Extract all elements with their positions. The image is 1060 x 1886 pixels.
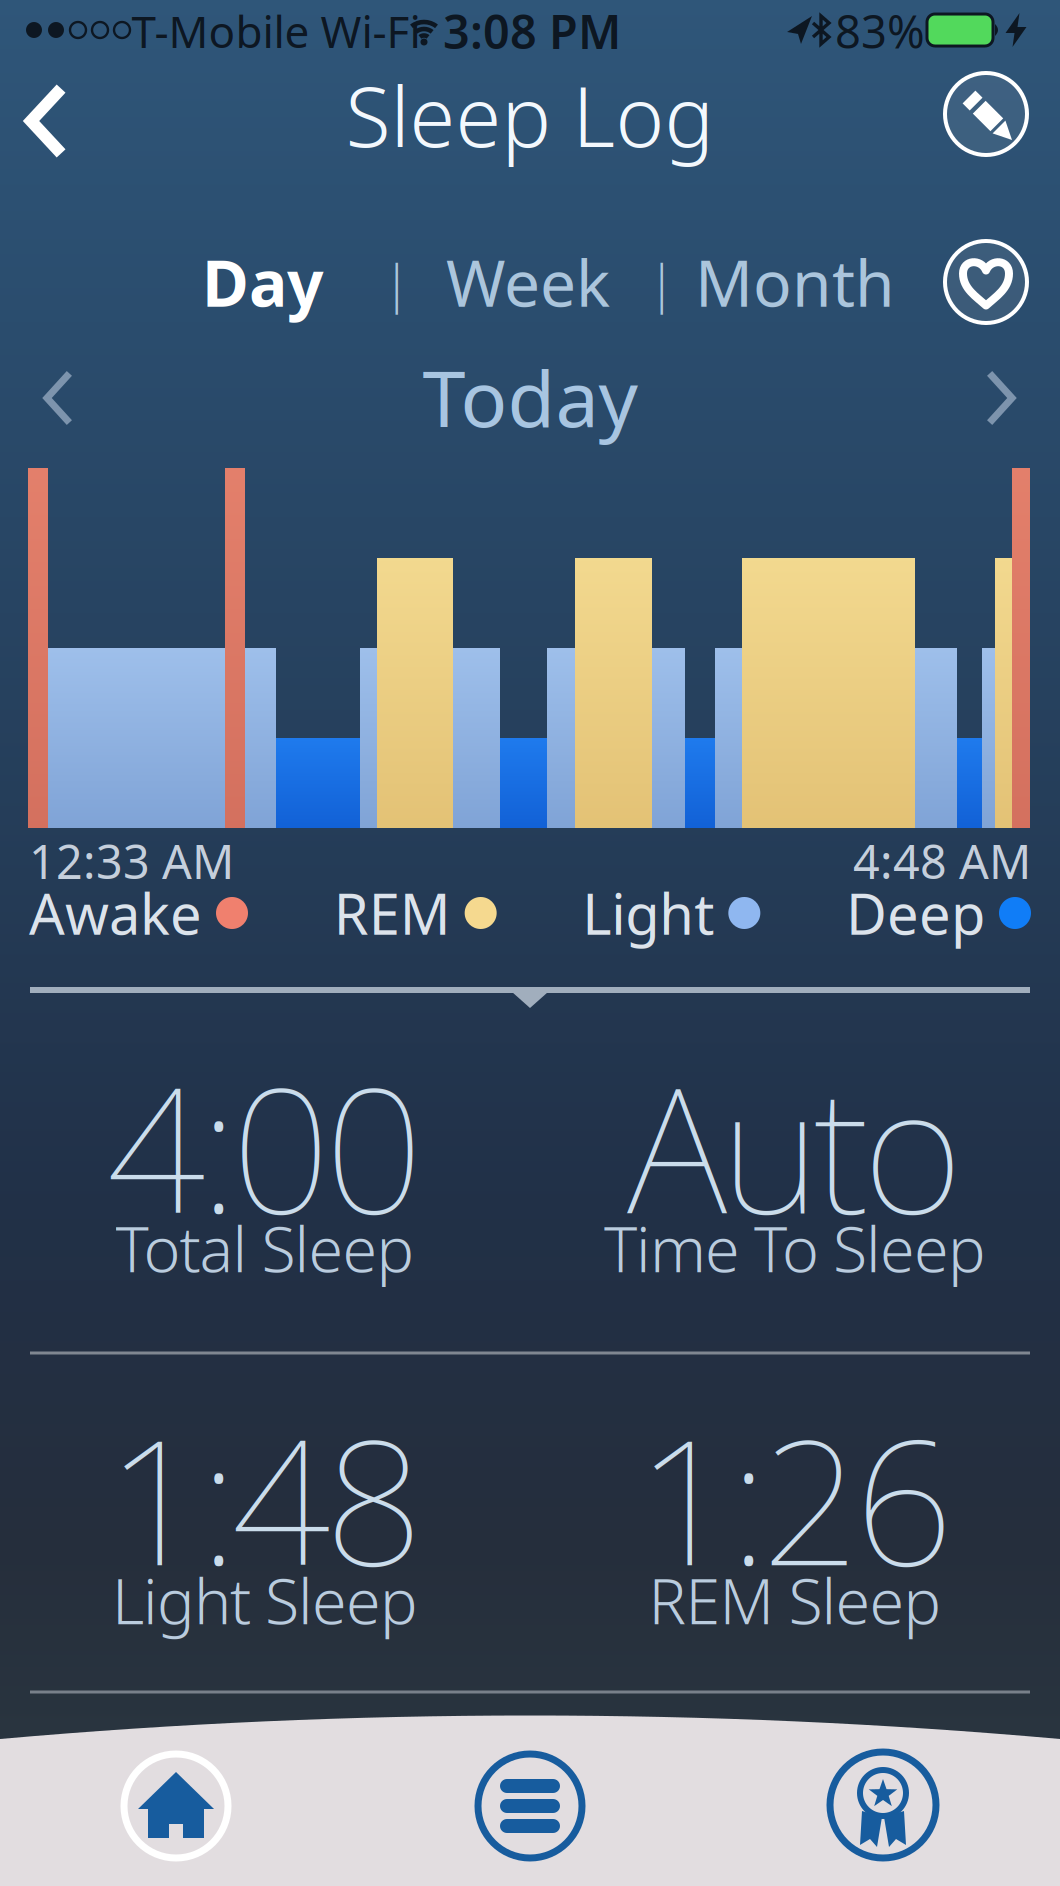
staticText: REM Sleep: [648, 1558, 941, 1642]
staticText: 4:00: [106, 1031, 423, 1261]
staticText: 1:48: [106, 1383, 423, 1613]
staticText: Sleep Log: [345, 60, 714, 170]
button[interactable]: [943, 239, 1029, 325]
button[interactable]: [475, 1751, 585, 1861]
staticText: Auto: [627, 1031, 963, 1261]
staticText: Total Sleep: [115, 1206, 414, 1290]
staticText: Time To Sleep: [604, 1206, 986, 1290]
button[interactable]: [827, 1749, 939, 1861]
button[interactable]: [28, 91, 60, 151]
button[interactable]: Week: [446, 239, 610, 324]
staticText: Awake: [29, 876, 202, 950]
staticText: Deep: [846, 876, 985, 950]
staticText: 3:08 PM: [443, 0, 621, 62]
staticText: |: [383, 248, 411, 316]
staticText: Day: [202, 239, 324, 324]
staticText: Light Sleep: [112, 1558, 418, 1642]
button[interactable]: [45, 374, 69, 422]
button[interactable]: Month: [695, 239, 895, 324]
staticText: Month: [695, 239, 895, 324]
staticText: REM: [334, 876, 451, 950]
staticText: 12:33 AM: [29, 830, 234, 892]
staticText: Light: [582, 876, 714, 950]
staticText: Today: [422, 346, 637, 448]
staticText: 1:26: [636, 1383, 953, 1613]
button[interactable]: [121, 1751, 231, 1861]
staticText: 4:48 AM: [853, 830, 1031, 892]
button[interactable]: Day: [202, 239, 324, 324]
staticText: T-Mobile Wi-Fi: [131, 2, 420, 60]
staticText: |: [648, 248, 676, 316]
staticText: Week: [446, 239, 610, 324]
button[interactable]: [990, 374, 1014, 422]
staticText: 83%: [835, 1, 925, 61]
button[interactable]: [943, 71, 1029, 157]
